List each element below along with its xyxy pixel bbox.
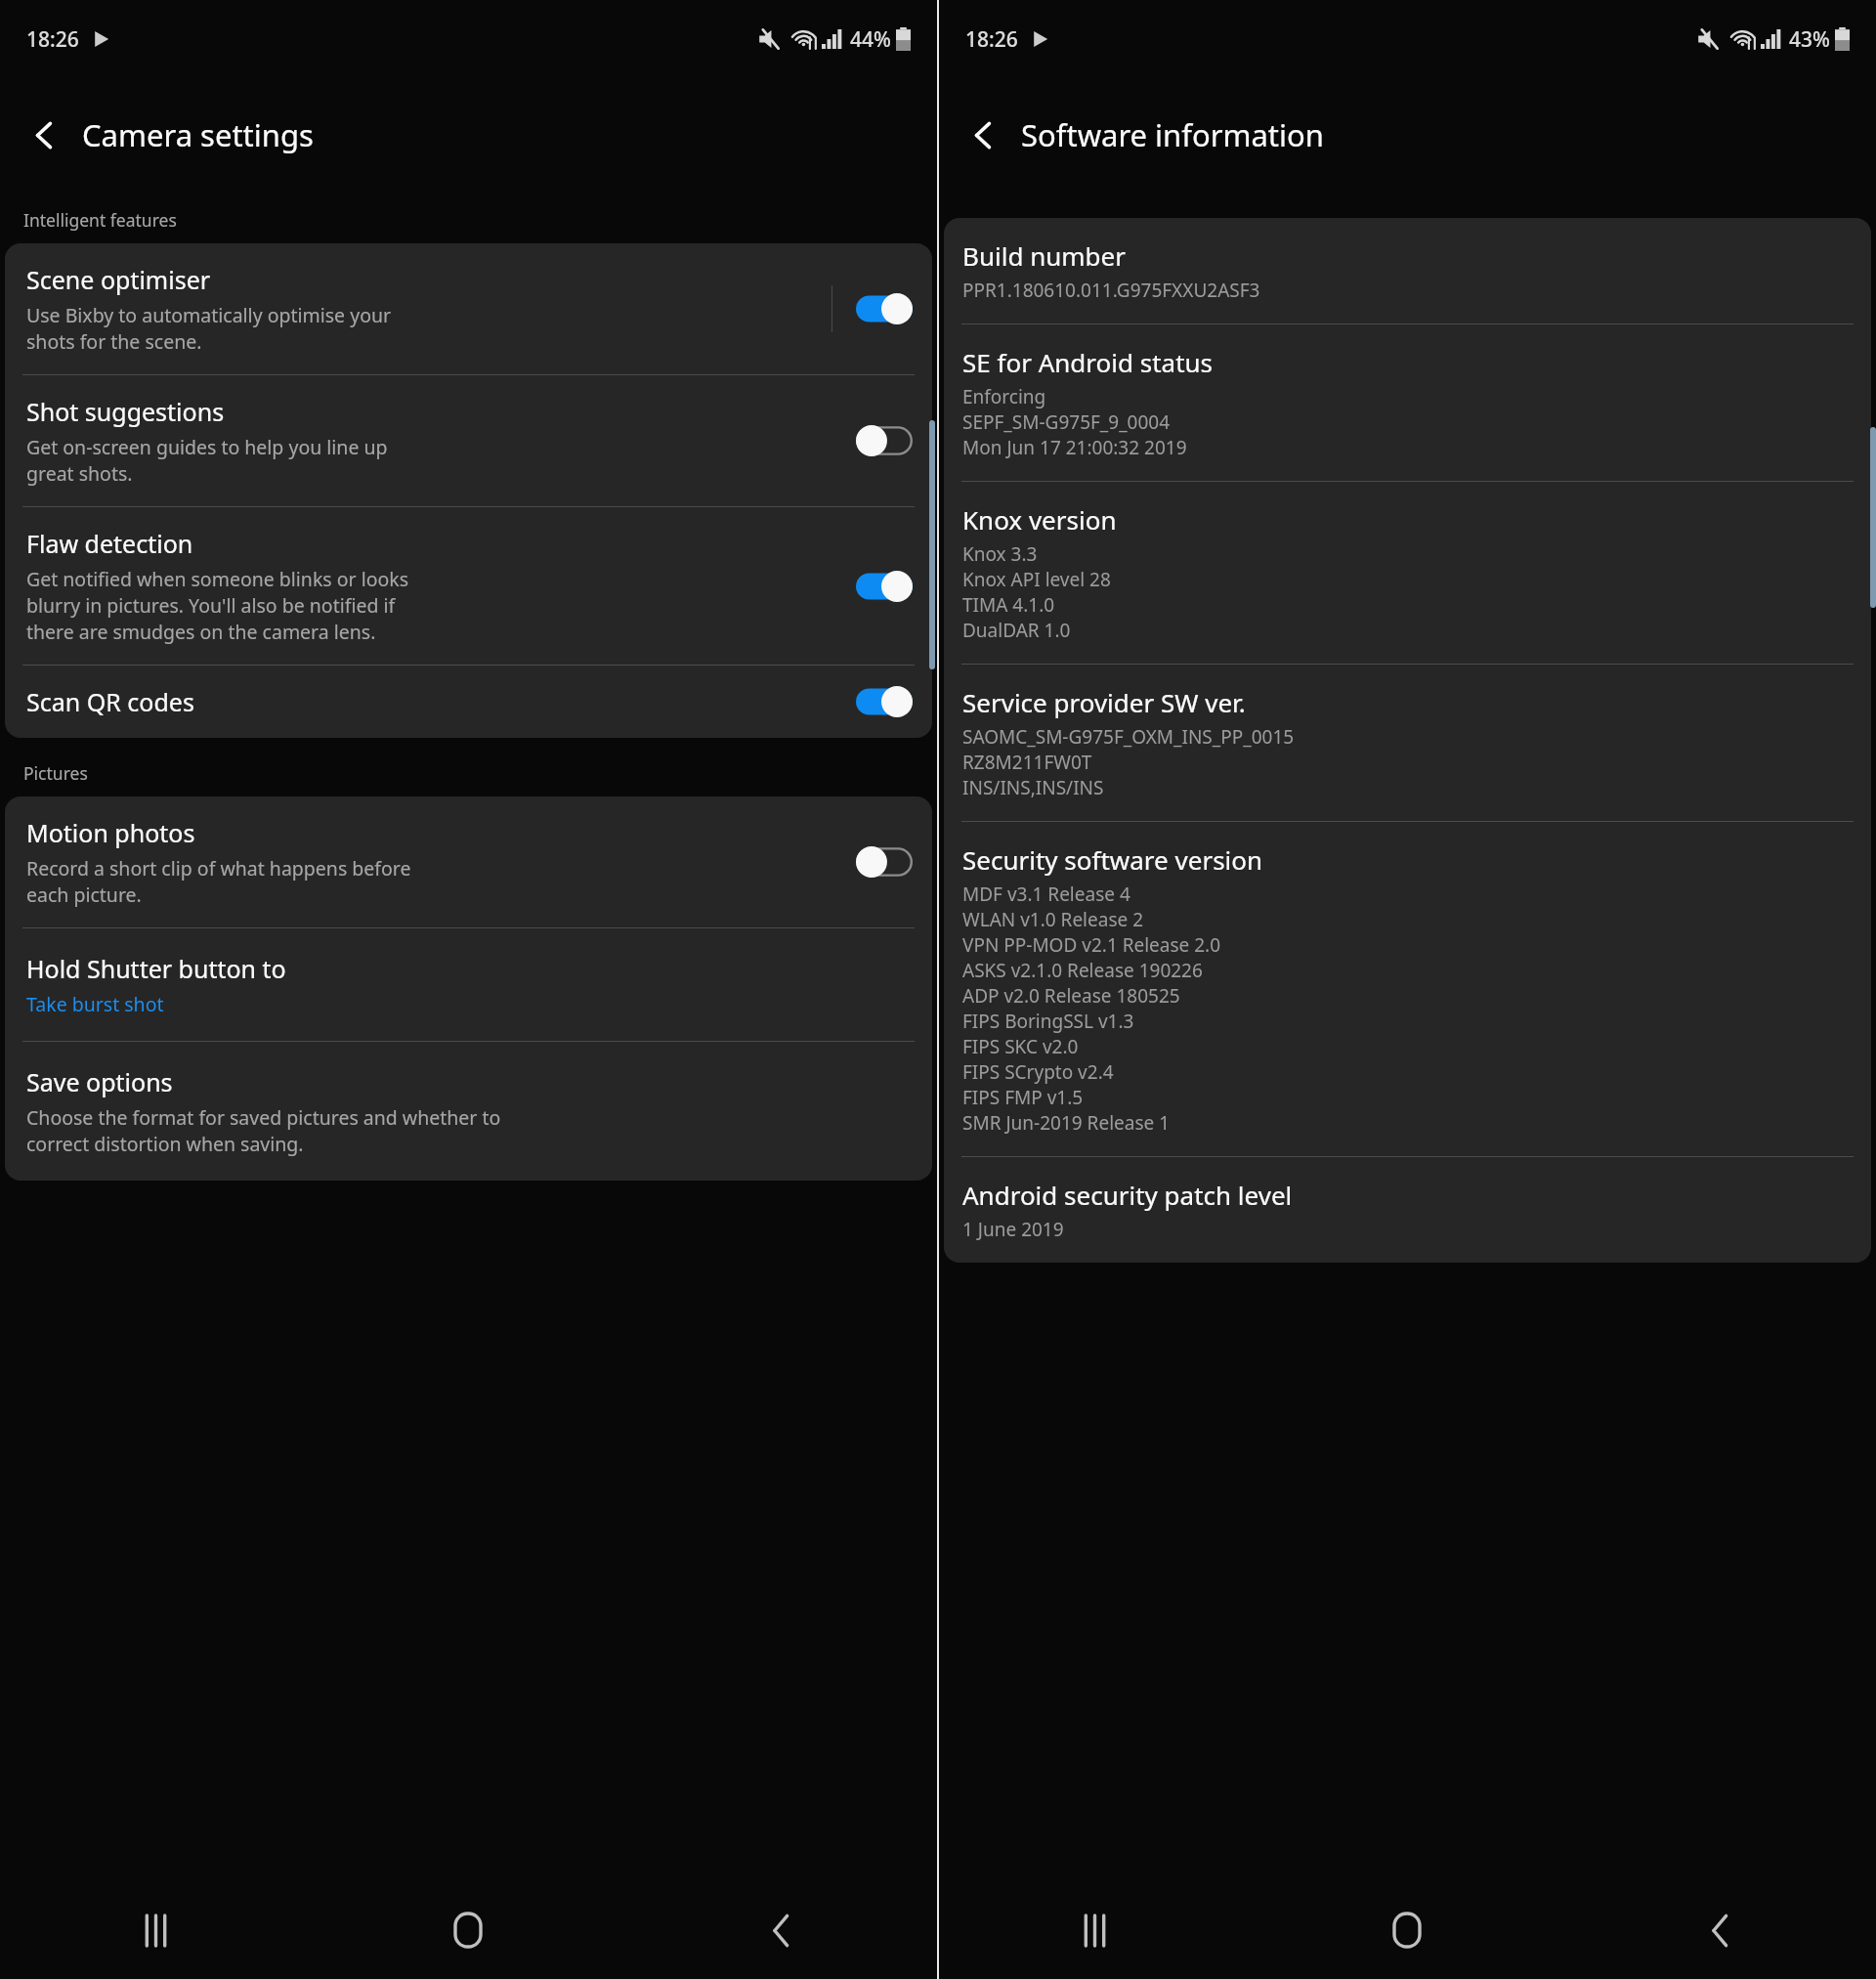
button[interactable]: Flaw detection <box>5 507 932 665</box>
staticText: TIMA 4.1.0 <box>962 592 1055 618</box>
staticText: Flaw detection <box>26 527 193 560</box>
staticText: Scene optimiser <box>26 263 211 296</box>
staticText: Intelligent features <box>23 208 177 232</box>
button[interactable]: Recent apps <box>0 1881 312 1979</box>
staticText: Security software version <box>962 842 1263 877</box>
button[interactable]: Back <box>1563 1881 1876 1979</box>
staticText: Build number <box>962 238 1126 273</box>
button[interactable]: SE for Android status <box>944 324 1871 481</box>
button[interactable]: Hold Shutter button to <box>5 928 932 1041</box>
staticText: Shot suggestions <box>26 395 225 428</box>
staticText: SE for Android status <box>962 345 1214 379</box>
staticText: Get notified when someone blinks or look… <box>26 566 409 645</box>
button[interactable]: Back <box>16 107 72 163</box>
staticText: RZ8M211FW0T <box>962 750 1092 775</box>
staticText: Motion photos <box>26 816 195 849</box>
button[interactable]: Knox version <box>944 482 1871 664</box>
button[interactable]: Scan QR codes <box>5 666 932 738</box>
staticText: SAOMC_SM-G975F_OXM_INS_PP_0015 <box>962 724 1295 750</box>
staticText: 18:26 <box>965 25 1018 54</box>
staticText: Hold Shutter button to <box>26 952 286 985</box>
staticText: Scan QR codes <box>26 685 194 718</box>
staticText: Take burst shot <box>26 991 164 1017</box>
staticText: Software information <box>1021 114 1324 155</box>
staticText: Knox version <box>962 502 1117 537</box>
staticText: Camera settings <box>82 114 314 155</box>
staticText: SEPF_SM-G975F_9_0004 <box>962 409 1171 435</box>
button[interactable]: Home <box>312 1881 624 1979</box>
staticText: FIPS SKC v2.0 <box>962 1034 1079 1059</box>
staticText: PPR1.180610.011.G975FXXU2ASF3 <box>962 278 1260 303</box>
button[interactable]: Scene optimiser <box>5 243 932 374</box>
staticText: Save options <box>26 1065 173 1098</box>
button[interactable]: Switch on <box>856 292 913 325</box>
staticText: WLAN v1.0 Release 2 <box>962 907 1144 932</box>
button[interactable]: Motion photos <box>5 796 932 927</box>
staticText: FIPS BoringSSL v1.3 <box>962 1009 1134 1034</box>
staticText: Service provider SW ver. <box>962 685 1246 719</box>
button[interactable]: Switch on <box>856 685 913 718</box>
button[interactable]: Security software version <box>944 822 1871 1156</box>
button[interactable]: Build number <box>944 218 1871 323</box>
button[interactable]: Service provider SW ver. <box>944 665 1871 821</box>
staticText: ADP v2.0 Release 180525 <box>962 983 1180 1009</box>
staticText: ASKS v2.1.0 Release 190226 <box>962 958 1203 983</box>
button[interactable]: Shot suggestions <box>5 375 932 506</box>
staticText: Mon Jun 17 21:00:32 2019 <box>962 435 1187 460</box>
staticText: FIPS FMP v1.5 <box>962 1085 1084 1110</box>
staticText: Choose the format for saved pictures and… <box>26 1104 501 1157</box>
staticText: Use Bixby to automatically optimise your… <box>26 302 392 355</box>
button[interactable]: Switch off <box>856 845 913 879</box>
button[interactable]: Switch on <box>856 570 913 603</box>
staticText: 44% <box>850 25 891 54</box>
staticText: Android security patch level <box>962 1178 1293 1212</box>
button[interactable]: Save options <box>5 1042 932 1181</box>
button[interactable]: Home <box>1251 1881 1563 1979</box>
staticText: 1 June 2019 <box>962 1217 1064 1242</box>
staticText: Enforcing <box>962 384 1046 409</box>
staticText: FIPS SCrypto v2.4 <box>962 1059 1114 1085</box>
staticText: INS/INS,INS/INS <box>962 775 1104 800</box>
button[interactable]: Switch off <box>856 424 913 457</box>
button[interactable]: Back <box>955 107 1011 163</box>
staticText: 18:26 <box>26 25 79 54</box>
staticText: MDF v3.1 Release 4 <box>962 882 1130 907</box>
staticText: Knox API level 28 <box>962 567 1111 592</box>
staticText: 43% <box>1789 25 1830 54</box>
staticText: DualDAR 1.0 <box>962 618 1071 643</box>
staticText: Get on-screen guides to help you line up… <box>26 434 388 487</box>
staticText: Record a short clip of what happens befo… <box>26 855 411 908</box>
button[interactable]: Android security patch level <box>944 1157 1871 1263</box>
staticText: SMR Jun-2019 Release 1 <box>962 1110 1171 1136</box>
staticText: Pictures <box>23 761 88 785</box>
staticText: VPN PP-MOD v2.1 Release 2.0 <box>962 932 1221 958</box>
button[interactable]: Recent apps <box>939 1881 1251 1979</box>
staticText: Knox 3.3 <box>962 541 1038 567</box>
button[interactable]: Back <box>624 1881 937 1979</box>
